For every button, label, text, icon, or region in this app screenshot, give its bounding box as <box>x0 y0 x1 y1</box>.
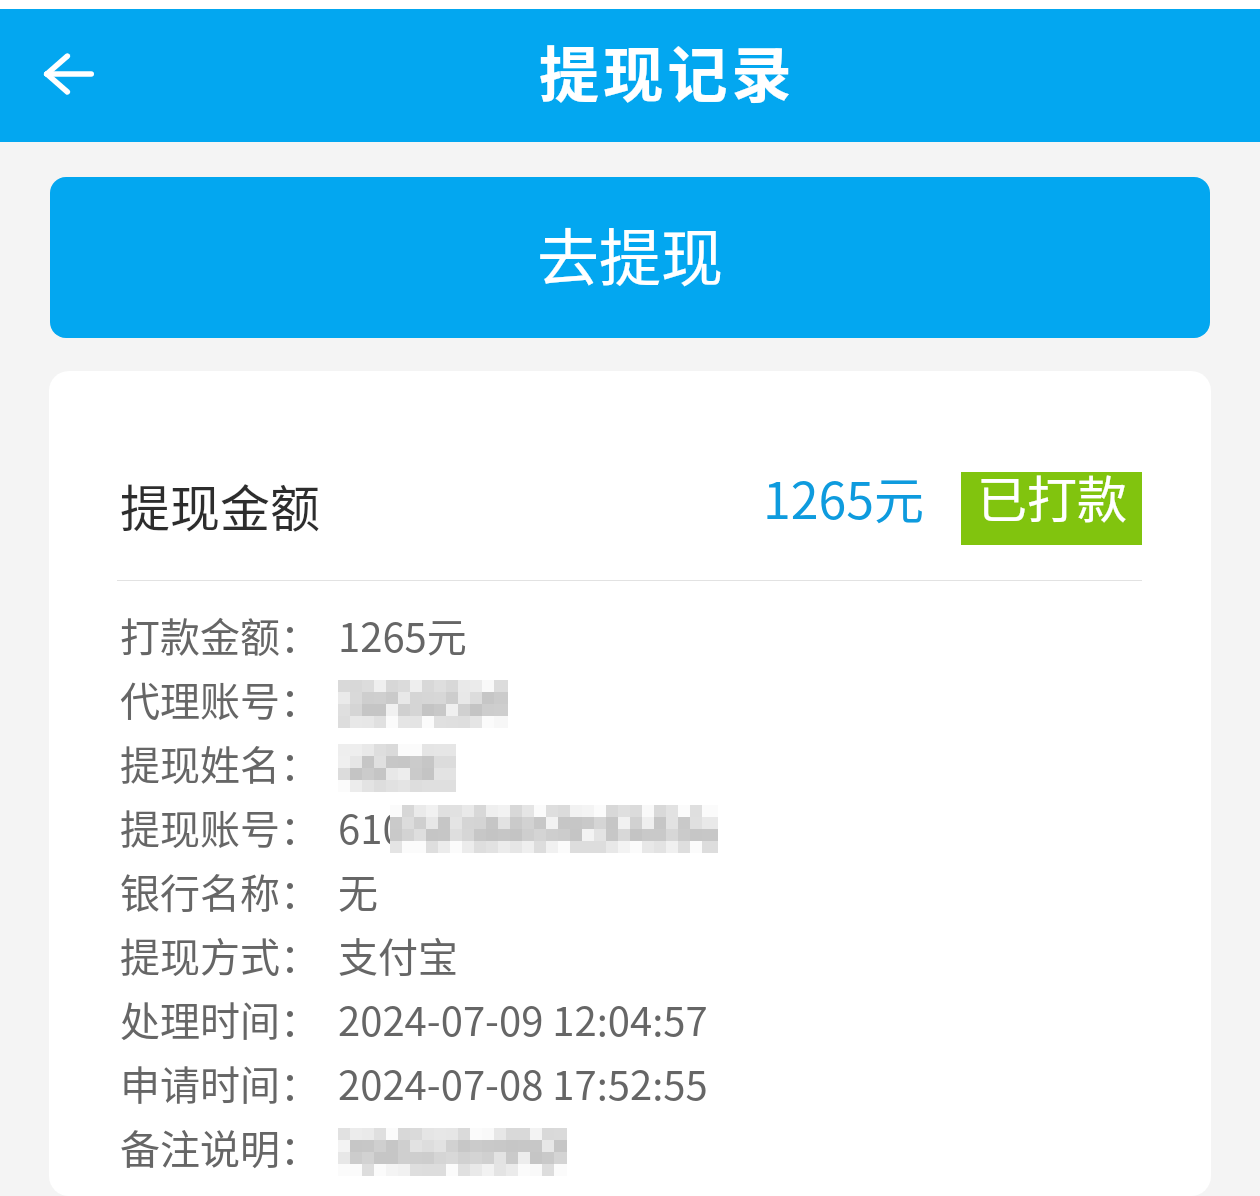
staticText: 1265元 <box>763 461 924 533</box>
button[interactable]: 提现金额 <box>49 371 1211 1196</box>
button[interactable]: Back <box>19 24 119 124</box>
staticText: 提现姓名： <box>120 734 320 792</box>
staticText: 备注说明： <box>120 1118 320 1176</box>
staticText: 提现账号： <box>120 798 320 856</box>
button[interactable]: 去提现 <box>50 177 1210 338</box>
staticText: 支付宝 <box>338 926 458 984</box>
staticText: 去提现 <box>537 209 724 299</box>
staticText: 无 <box>338 862 378 920</box>
staticText: 申请时间： <box>120 1054 320 1112</box>
staticText: 提现金额 <box>120 469 320 541</box>
staticText: 已打款 <box>977 460 1127 532</box>
staticText: 银行名称： <box>120 862 320 920</box>
staticText: 2024-07-09 12:04:57 <box>338 990 708 1048</box>
staticText: 代理账号： <box>120 670 320 728</box>
staticText: 打款金额： <box>120 606 320 664</box>
staticText: 处理时间： <box>120 990 320 1048</box>
staticText: 提现方式： <box>120 926 320 984</box>
staticText: 1265元 <box>338 606 467 664</box>
staticText: 2024-07-08 17:52:55 <box>338 1054 708 1112</box>
staticText: 提现记录 <box>539 27 796 114</box>
staticText: 610 <box>338 798 405 856</box>
